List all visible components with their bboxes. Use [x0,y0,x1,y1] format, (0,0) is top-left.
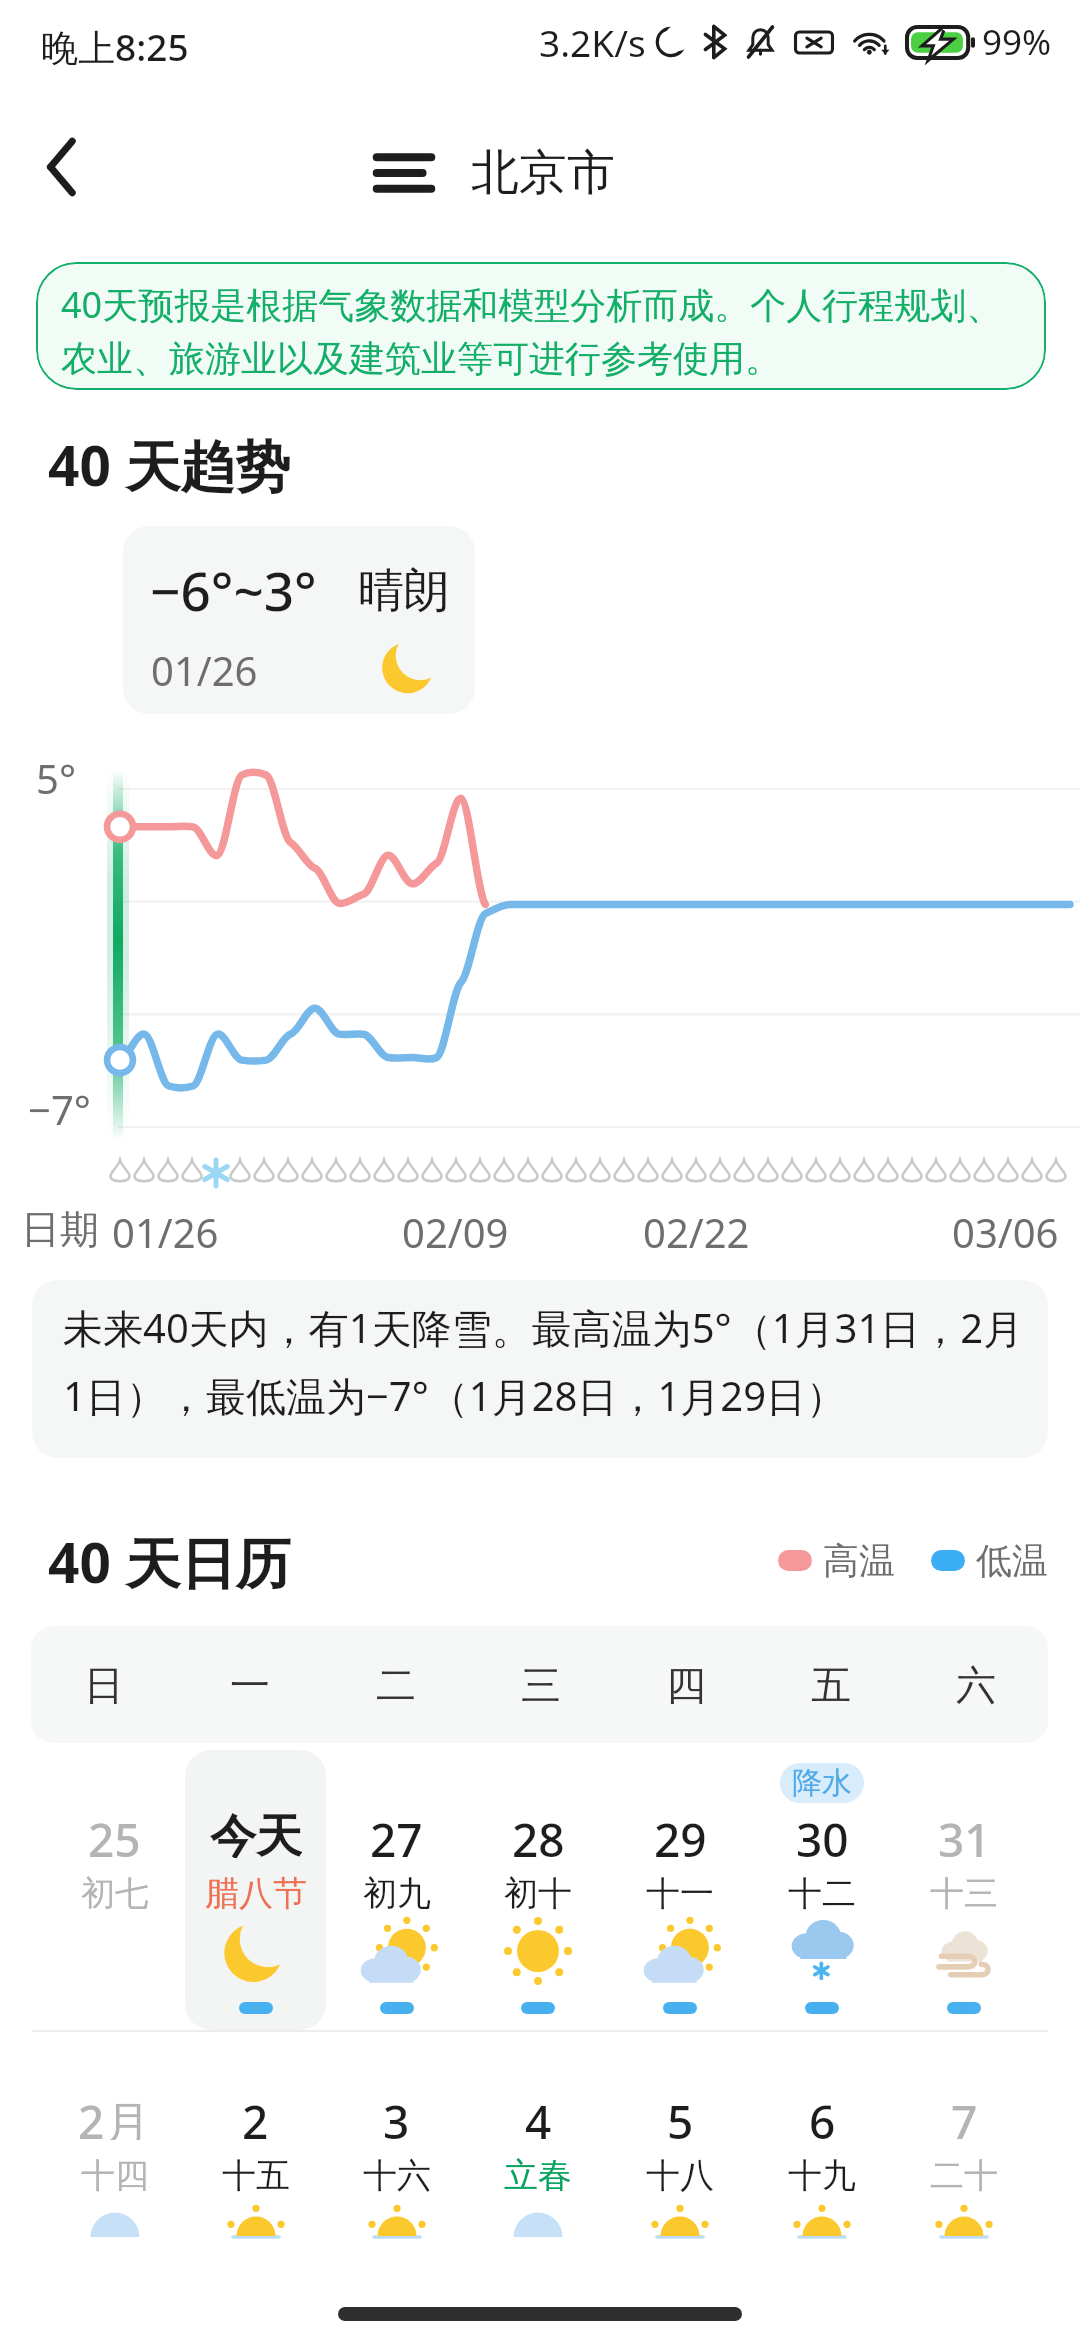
button[interactable]: 2月 [44,2032,185,2312]
button[interactable]: 25 [44,1750,185,2030]
button[interactable]: 高温 [778,1538,1048,1583]
staticText: 2 [242,2090,269,2140]
staticText: 低温 [976,1538,1048,1583]
staticText: 十六 [363,2154,431,2194]
staticText: 7 [951,2090,978,2140]
staticText: 腊八节 [205,1872,307,1912]
staticText: 十四 [81,2154,149,2194]
button[interactable]: 27 [326,1750,467,2030]
staticText: 6 [809,2090,836,2140]
button[interactable]: 29 [609,1750,751,2030]
staticText: 初七 [81,1872,149,1912]
staticText: 5° [36,751,76,805]
staticText: 十二 [788,1872,856,1912]
staticText: 2月 [78,2090,151,2140]
staticText: 十三 [930,1872,998,1912]
staticText: 40 天日历 [48,1524,291,1599]
staticText: 降水 [792,1764,852,1802]
staticText: 高温 [823,1538,895,1583]
staticText: 4 [525,2090,552,2140]
staticText: 40 天趋势 [48,427,291,502]
staticText: 二十 [930,2154,998,2194]
staticText: 晚上8:25 [41,21,189,72]
staticText: 3.2K/s [539,17,646,67]
staticText: 十一 [646,1872,714,1912]
staticText: 一 [230,1660,270,1710]
button[interactable]: 40天预报是根据气象数据和模型分析而成。个人行程规划、农业、旅游业以及建筑业等可… [36,262,1046,390]
staticText: 31 [938,1808,991,1858]
button[interactable]: 2 [185,2032,326,2312]
button[interactable]: 降水 [751,1750,893,2030]
staticText: 5 [667,2090,694,2140]
staticText: 初十 [504,1872,572,1912]
staticText: 十五 [222,2154,290,2194]
staticText: 二 [376,1660,416,1710]
staticText: 十九 [788,2154,856,2194]
staticText: 28 [512,1808,565,1858]
staticText: 01/26 [112,1205,219,1259]
staticText: 六 [956,1660,996,1710]
staticText: 25 [88,1808,141,1858]
button[interactable]: 北京市 [375,133,615,213]
button[interactable]: 今天 [185,1750,326,2030]
staticText: 四 [666,1660,706,1710]
staticText: 30 [796,1808,849,1858]
staticText: 三 [521,1660,561,1710]
staticText: 北京市 [471,143,615,203]
staticText: 十八 [646,2154,714,2194]
button[interactable]: 6 [751,2032,893,2312]
button[interactable]: 31 [893,1750,1035,2030]
button[interactable]: 4 [467,2032,609,2312]
staticText: 日期 [21,1205,99,1254]
staticText: 晴朗 [358,562,450,620]
staticText: 27 [370,1808,423,1858]
staticText: 初九 [363,1872,431,1912]
staticText: 日 [84,1660,124,1710]
staticText: 五 [811,1660,851,1710]
staticText: 02/09 [402,1205,509,1259]
staticText: −6°~3° [150,554,317,626]
button[interactable]: 5 [609,2032,751,2312]
button[interactable]: 未来40天内，有1天降雪。最高温为5°（1月31日，2月1日），最低温为−7°（… [32,1280,1048,1458]
staticText: 99% [982,18,1052,66]
staticText: −7° [28,1082,91,1136]
staticText: 未来40天内，有1天降雪。最高温为5°（1月31日，2月1日），最低温为−7°（… [63,1300,1034,1423]
staticText: 3 [383,2090,410,2140]
staticText: 今天 [210,1808,302,1858]
button[interactable]: 3 [326,2032,467,2312]
button[interactable]: 7 [893,2032,1035,2312]
button[interactable]: 28 [467,1750,609,2030]
staticText: 02/22 [643,1205,750,1259]
button[interactable]: −6°~3° [123,526,475,714]
staticText: 40天预报是根据气象数据和模型分析而成。个人行程规划、农业、旅游业以及建筑业等可… [61,280,1024,382]
button[interactable]: Back [20,125,104,209]
staticText: 29 [654,1808,707,1858]
staticText: 01/26 [151,643,258,697]
staticText: 03/06 [952,1205,1059,1259]
staticText: 立春 [504,2154,572,2194]
